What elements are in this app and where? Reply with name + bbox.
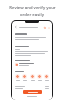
button[interactable]: Quick action (37, 74, 42, 81)
button[interactable]: Quick action (44, 74, 49, 81)
button[interactable]: Quick action (15, 74, 20, 81)
staticText: order easily (20, 12, 44, 18)
button[interactable] (23, 90, 42, 94)
button[interactable]: Search (43, 26, 46, 29)
button[interactable]: Back (14, 25, 18, 29)
staticText: Review and verify your (9, 5, 56, 11)
button[interactable]: More options (47, 26, 50, 29)
button[interactable]: Quick action (30, 74, 35, 81)
button[interactable] (15, 63, 49, 66)
button[interactable]: Quick action (22, 74, 27, 81)
